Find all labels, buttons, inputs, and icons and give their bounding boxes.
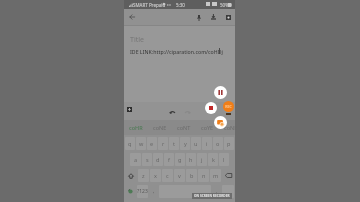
button[interactable]: r xyxy=(158,137,168,150)
button[interactable]: w xyxy=(136,137,146,150)
button[interactable]: h xyxy=(186,153,196,166)
staticText: o xyxy=(216,140,220,147)
staticText: h xyxy=(189,156,193,163)
staticText: 5:30 xyxy=(176,2,185,8)
staticText: r xyxy=(162,140,165,147)
button[interactable]: Emoji xyxy=(125,185,136,198)
button[interactable]: e xyxy=(147,137,157,150)
staticText: ON SCREEN RECORDER xyxy=(194,194,230,198)
button[interactable]: q xyxy=(125,137,135,150)
button[interactable]: coNE xyxy=(150,120,170,135)
button[interactable]: Back xyxy=(127,12,137,22)
button[interactable]: coHR xyxy=(126,120,146,135)
button[interactable]: l xyxy=(219,153,229,166)
button[interactable]: coYE xyxy=(197,120,217,135)
staticText: j xyxy=(201,156,203,163)
staticText: coNT xyxy=(177,124,191,131)
button[interactable]: c xyxy=(162,169,173,182)
staticText: e xyxy=(150,140,154,147)
button[interactable]: p xyxy=(224,137,234,150)
staticText: z xyxy=(142,172,145,179)
button[interactable]: Pause xyxy=(214,86,227,99)
staticText: . xyxy=(216,188,218,195)
button[interactable]: k xyxy=(208,153,218,166)
button[interactable]: Space xyxy=(159,185,211,198)
button[interactable]: ?123 xyxy=(137,185,148,198)
staticText: coNE xyxy=(153,124,167,131)
staticText: , xyxy=(153,188,155,195)
staticText: g xyxy=(178,156,182,163)
button[interactable]: i xyxy=(202,137,212,150)
button[interactable]: Undo xyxy=(169,110,175,114)
button[interactable]: t xyxy=(169,137,179,150)
button[interactable]: Paste xyxy=(127,107,132,112)
staticText: x xyxy=(154,172,157,179)
button[interactable]: b xyxy=(186,169,197,182)
staticText: q xyxy=(128,140,132,147)
button[interactable]: Record xyxy=(223,101,234,112)
staticText: b xyxy=(190,172,194,179)
button[interactable]: o xyxy=(213,137,223,150)
staticText: coNE xyxy=(224,124,238,131)
button[interactable]: Pin xyxy=(197,15,201,21)
button[interactable]: m xyxy=(210,169,221,182)
staticText: p xyxy=(227,140,231,147)
staticText: w xyxy=(139,140,144,147)
button[interactable]: Open recorder xyxy=(214,116,227,129)
staticText: f xyxy=(168,156,170,163)
staticText: coYE xyxy=(201,124,214,131)
staticText: Title xyxy=(130,35,144,45)
button[interactable]: Enter xyxy=(222,185,234,198)
button[interactable]: u xyxy=(191,137,201,150)
staticText: u xyxy=(194,140,198,147)
button[interactable]: d xyxy=(153,153,163,166)
button[interactable]: y xyxy=(180,137,190,150)
button[interactable]: coNT xyxy=(174,120,194,135)
button[interactable]: Shift xyxy=(125,169,137,182)
staticText: IDE LINK:http://ciparation.com/coHDj xyxy=(130,48,223,55)
button[interactable]: Redo xyxy=(185,110,191,114)
button[interactable]: coNE xyxy=(221,120,241,135)
button[interactable]: Save xyxy=(226,15,231,20)
button[interactable]: f xyxy=(164,153,174,166)
button[interactable]: Backspace xyxy=(222,169,234,182)
button[interactable]: Download xyxy=(211,14,216,20)
staticText: i xyxy=(206,140,208,147)
staticText: coHR xyxy=(129,124,143,131)
button[interactable]: z xyxy=(138,169,149,182)
button[interactable]: n xyxy=(198,169,209,182)
button[interactable]: g xyxy=(175,153,185,166)
staticText: m xyxy=(213,172,219,179)
button[interactable]: . xyxy=(212,185,221,198)
staticText: 50% xyxy=(220,2,229,8)
button[interactable]: j xyxy=(197,153,207,166)
staticText: REC xyxy=(225,104,232,109)
staticText: k xyxy=(212,156,215,163)
staticText: n xyxy=(202,172,206,179)
staticText: c xyxy=(166,172,169,179)
button[interactable]: a xyxy=(130,153,141,166)
staticText: d xyxy=(156,156,160,163)
staticText: l xyxy=(223,156,225,163)
button[interactable]: s xyxy=(142,153,152,166)
staticText: y xyxy=(184,140,187,147)
staticText: SMART Prepaid xyxy=(133,2,166,8)
button[interactable]: Stop xyxy=(205,102,217,114)
button[interactable]: v xyxy=(174,169,185,182)
staticText: a xyxy=(134,156,138,163)
staticText: v xyxy=(178,172,181,179)
staticText: s xyxy=(146,156,149,163)
button[interactable]: x xyxy=(150,169,161,182)
staticText: t xyxy=(173,140,175,147)
staticText: ?123 xyxy=(137,188,148,195)
